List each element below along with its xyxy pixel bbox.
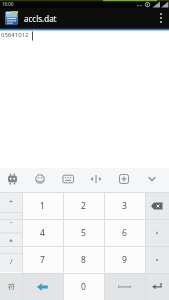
button[interactable]: 1 — [22, 192, 63, 219]
button[interactable] — [104, 273, 145, 300]
button[interactable]: accls.dat — [0, 8, 169, 28]
button[interactable]: - — [0, 212, 22, 232]
button[interactable]: + — [0, 192, 22, 212]
staticText: * — [9, 237, 13, 247]
staticText: 0 — [81, 281, 86, 293]
button[interactable]: 符 — [0, 273, 22, 300]
button[interactable]: 9 — [104, 246, 145, 273]
staticText: accls.dat — [24, 13, 57, 24]
staticText: 6 — [122, 227, 127, 239]
button[interactable]: / — [0, 252, 22, 272]
button[interactable]: 5 — [63, 219, 104, 246]
staticText: 05641012 — [1, 31, 29, 39]
button[interactable] — [145, 192, 169, 219]
button[interactable] — [145, 219, 169, 246]
staticText: 4 — [40, 227, 45, 239]
staticText: 3 — [122, 200, 127, 212]
button[interactable] — [145, 246, 169, 273]
button[interactable]: 3 — [104, 192, 145, 219]
button[interactable]: 2 — [63, 192, 104, 219]
button[interactable]: * — [0, 232, 22, 252]
staticText: 符 — [8, 282, 15, 291]
button[interactable]: 0 — [63, 273, 104, 300]
staticText: 2 — [81, 200, 86, 212]
staticText: / — [10, 257, 13, 267]
staticText: 5 — [81, 227, 86, 239]
staticText: + — [9, 197, 14, 207]
button[interactable]: 8 — [63, 246, 104, 273]
staticText: 8 — [81, 254, 86, 266]
staticText: 16:06 — [2, 1, 14, 7]
button[interactable]: 6 — [104, 219, 145, 246]
button[interactable] — [22, 273, 63, 300]
staticText: 9 — [122, 254, 127, 266]
staticText: 7 — [40, 254, 45, 266]
button[interactable] — [145, 273, 169, 300]
staticText: 1 — [40, 200, 45, 212]
button[interactable] — [0, 168, 169, 192]
button[interactable]: 7 — [22, 246, 63, 273]
staticText: - — [10, 217, 13, 227]
button[interactable]: 4 — [22, 219, 63, 246]
